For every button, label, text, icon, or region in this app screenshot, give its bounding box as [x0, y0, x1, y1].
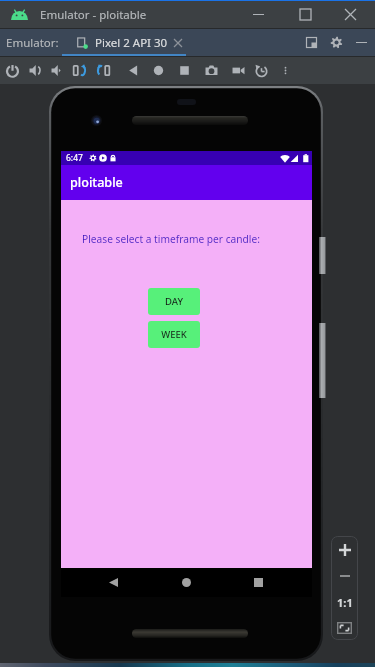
staticText: Emulator:: [6, 35, 59, 51]
button[interactable]: Volume up: [24, 57, 46, 84]
staticText: Please select a timeframe per candle:: [82, 232, 260, 246]
button[interactable]: Volume down: [46, 57, 68, 84]
button[interactable]: Back: [91, 568, 135, 597]
button[interactable]: Actual size: [331, 589, 358, 615]
button[interactable]: Overview: [173, 57, 195, 84]
staticText: DAY: [165, 295, 183, 308]
button[interactable]: Back: [122, 57, 144, 84]
button[interactable]: Dock: [300, 29, 323, 56]
button[interactable]: History: [250, 57, 272, 84]
staticText: 6:47: [66, 152, 83, 164]
button[interactable]: Close tab: [171, 29, 185, 56]
button[interactable]: Maximize: [283, 1, 327, 28]
button[interactable]: Zoom in: [331, 536, 358, 563]
button[interactable]: Hide: [350, 29, 373, 56]
button[interactable]: Minimize: [236, 1, 280, 28]
button[interactable]: Pixel 2 API 30: [62, 29, 186, 56]
staticText: WEEK: [161, 328, 187, 341]
staticText: Pixel 2 API 30: [95, 35, 168, 51]
button[interactable]: Recents: [236, 568, 280, 597]
button[interactable]: Rotate right: [92, 57, 114, 84]
button[interactable]: More: [274, 57, 296, 84]
button[interactable]: WEEK: [148, 321, 200, 348]
button[interactable]: Home: [164, 568, 208, 597]
staticText: ploitable: [70, 174, 123, 191]
button[interactable]: Fit to screen: [331, 615, 358, 640]
button[interactable]: Zoom out: [331, 563, 358, 589]
button[interactable]: Close: [328, 1, 372, 28]
button[interactable]: Record screen: [227, 57, 249, 84]
staticText: Emulator - ploitable: [40, 7, 147, 23]
button[interactable]: DAY: [148, 288, 200, 315]
button[interactable]: Screenshot: [200, 57, 222, 84]
staticText: 1:1: [337, 595, 353, 610]
button[interactable]: Power: [1, 57, 23, 84]
button[interactable]: Settings: [325, 29, 348, 56]
button[interactable]: Home: [147, 57, 169, 84]
button[interactable]: Rotate left: [68, 57, 90, 84]
